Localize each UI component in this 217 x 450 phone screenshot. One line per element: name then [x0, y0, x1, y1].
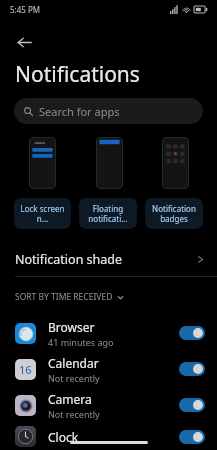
staticText: Floating notificati... [79, 203, 137, 224]
staticText: Not recently [48, 408, 100, 420]
button[interactable]: Toggle notifications [179, 326, 205, 340]
button[interactable]: SORT BY TIME RECEIVED [15, 291, 124, 303]
staticText: Calendar [48, 355, 99, 371]
button[interactable]: Lock screen n... [14, 198, 71, 229]
button[interactable]: 16 [0, 351, 217, 387]
button[interactable]: Search for apps [14, 98, 203, 124]
staticText: SORT BY TIME RECEIVED [15, 291, 113, 303]
button[interactable]: Floating notificati... [79, 198, 137, 229]
staticText: 41 minutes ago [48, 336, 114, 348]
staticText: Camera [48, 391, 92, 407]
staticText: Lock screen n... [14, 203, 71, 224]
staticText: Not recently [48, 372, 100, 384]
button[interactable]: Browser [0, 315, 217, 351]
button[interactable]: Toggle notifications [179, 362, 205, 376]
staticText: Search for apps [39, 104, 120, 119]
staticText: 5:45 PM [10, 4, 41, 15]
button[interactable]: Toggle notifications [179, 398, 205, 412]
staticText: 16 [19, 362, 32, 377]
button[interactable]: Back [8, 26, 40, 58]
staticText: Notification badges [145, 203, 203, 224]
staticText: Notification shade [15, 251, 123, 268]
staticText: Browser [48, 319, 95, 335]
staticText: Clock [48, 429, 79, 445]
staticText: Notifications [15, 60, 140, 89]
button[interactable]: Notification badges [145, 198, 203, 229]
button[interactable]: Camera [0, 387, 217, 423]
button[interactable]: Notification shade [0, 242, 217, 276]
button[interactable]: Clock [0, 423, 217, 450]
button[interactable]: Toggle notifications [179, 430, 205, 444]
